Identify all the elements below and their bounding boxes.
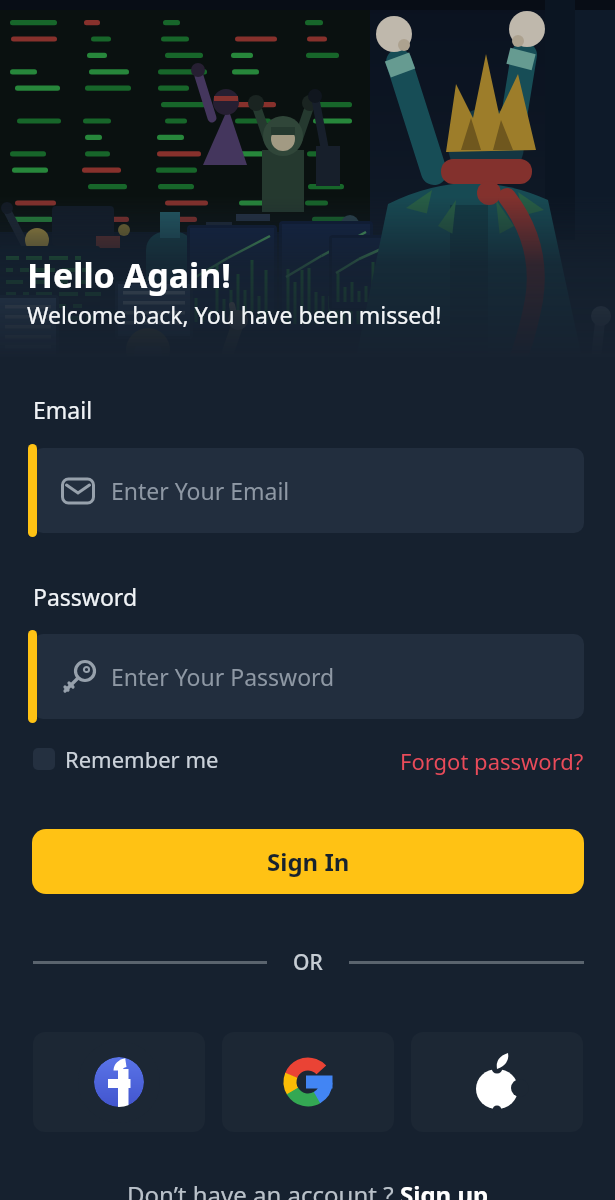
button[interactable]: Forgot password? <box>330 744 584 778</box>
button[interactable]: Sign In <box>32 829 584 894</box>
staticText: Remember me <box>65 744 219 774</box>
button[interactable] <box>222 1032 394 1132</box>
button[interactable]: Enter Your Email <box>33 448 584 533</box>
button[interactable]: Sign up <box>400 1178 489 1200</box>
button[interactable]: Enter Your Password <box>33 634 584 719</box>
staticText: Enter Your Email <box>111 475 290 506</box>
staticText: Email <box>33 394 93 425</box>
staticText: OR <box>293 948 323 976</box>
staticText: Enter Your Password <box>111 661 335 692</box>
staticText: Sign In <box>267 845 350 878</box>
staticText: Hello Again! <box>27 252 231 298</box>
staticText: Forgot password? <box>400 746 584 776</box>
staticText: Password <box>33 581 138 612</box>
staticText: Don’t have an account ? <box>127 1178 400 1200</box>
staticText: Welcome back, You have been missed! <box>27 299 442 330</box>
button[interactable] <box>411 1032 583 1132</box>
button[interactable] <box>33 1032 205 1132</box>
button[interactable]: Remember me <box>33 744 219 774</box>
